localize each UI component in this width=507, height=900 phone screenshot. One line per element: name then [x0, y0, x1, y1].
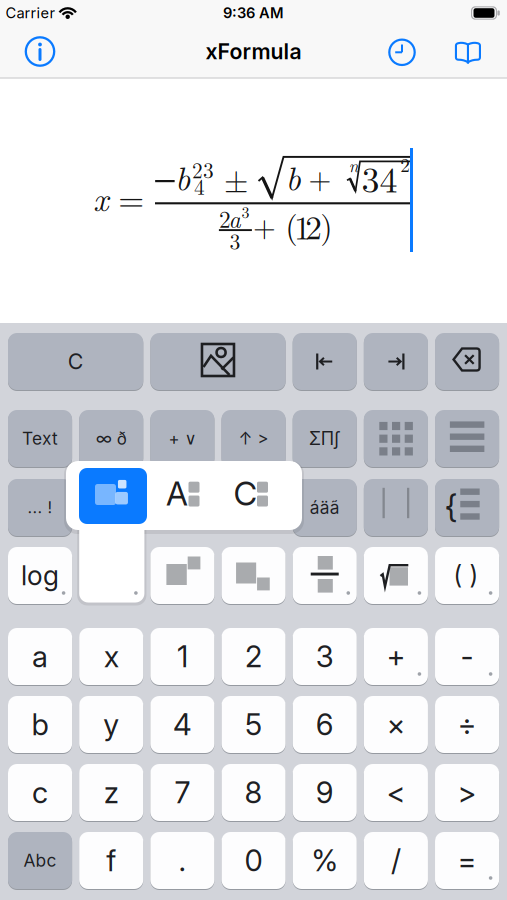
staticText: 3 [241, 200, 249, 223]
button[interactable]: Abc [8, 832, 72, 889]
button[interactable]: 7 [150, 764, 214, 821]
staticText: 5 [245, 707, 262, 742]
staticText: = [118, 174, 144, 221]
button[interactable]: - [435, 628, 499, 685]
button[interactable]: f [79, 832, 143, 889]
button[interactable]: > [435, 764, 499, 821]
staticText: × [386, 707, 405, 742]
staticText: % [311, 843, 338, 878]
button[interactable]: < [364, 764, 428, 821]
staticText: xFormula [205, 39, 301, 64]
button[interactable]: 9 [293, 764, 357, 821]
staticText: + [253, 204, 276, 246]
staticText: 8 [245, 775, 263, 810]
staticText: 1 [177, 639, 188, 674]
staticText: 23 [192, 154, 214, 184]
button[interactable]: Delete [435, 333, 499, 390]
button[interactable]: log [8, 547, 72, 604]
button[interactable]: 8 [221, 764, 286, 821]
button[interactable]: C [8, 333, 143, 390]
button[interactable]: c [8, 764, 72, 821]
button[interactable]: Absolute value [364, 479, 428, 536]
button[interactable]: Square root [364, 547, 428, 604]
staticText: z [104, 775, 119, 810]
staticText: / [391, 843, 401, 878]
staticText: Abc [23, 850, 56, 871]
button[interactable]: Superscript [150, 547, 214, 604]
button[interactable]: Info [22, 33, 58, 69]
staticText: 3 [316, 639, 334, 674]
button[interactable]: x [79, 628, 143, 685]
button[interactable]: 5 [221, 696, 286, 753]
button[interactable]: y [79, 696, 143, 753]
staticText: 3 [230, 225, 241, 256]
button[interactable]: Cases [435, 479, 499, 536]
staticText: n [349, 153, 359, 177]
button[interactable]: Text [8, 410, 72, 467]
staticText: C [68, 349, 84, 374]
button[interactable]: 6 [293, 696, 357, 753]
staticText: ( [454, 560, 463, 589]
button[interactable]: 1 [150, 628, 214, 685]
button[interactable]: ÷ [435, 696, 499, 753]
button[interactable]: b [8, 696, 72, 753]
staticText: x [93, 174, 108, 221]
staticText: áäã [310, 497, 340, 518]
button[interactable]: 4 [150, 696, 214, 753]
button[interactable]: 0 [221, 832, 286, 889]
button[interactable]: Parentheses [435, 547, 499, 604]
button[interactable]: áäã [293, 479, 357, 536]
button[interactable]: Subscript [221, 547, 286, 604]
button[interactable]: Move to start [293, 333, 357, 390]
staticText: f [106, 843, 116, 878]
staticText: C [233, 474, 257, 513]
staticText: ... ! [27, 498, 52, 517]
button[interactable]: . [150, 832, 214, 889]
staticText: > [458, 775, 477, 810]
staticText: ( [285, 202, 297, 247]
staticText: 9 [316, 775, 334, 810]
staticText: 0 [245, 843, 263, 878]
button[interactable]: ΣΠ∫ [293, 410, 357, 467]
button[interactable]: Lists [435, 410, 499, 467]
button[interactable]: + [364, 628, 428, 685]
staticText: ↑ > [239, 428, 269, 449]
button[interactable]: = [435, 832, 499, 889]
button[interactable]: Matrix layout [79, 468, 147, 524]
button[interactable]: % [293, 832, 357, 889]
staticText: A [166, 474, 188, 513]
button[interactable]: ∞ ð [79, 410, 143, 467]
button[interactable]: Align A [153, 466, 215, 522]
staticText: { [445, 487, 458, 526]
button[interactable]: 3 [293, 628, 357, 685]
staticText: = [458, 843, 477, 878]
button[interactable]: + ∨ [150, 410, 214, 467]
staticText: 2 [305, 202, 322, 249]
staticText: 1 [294, 202, 311, 249]
staticText: 2 [245, 639, 262, 674]
button[interactable]: Move to end [364, 333, 428, 390]
staticText: y [103, 707, 119, 742]
staticText: + ∨ [168, 428, 196, 449]
button[interactable]: Library [455, 41, 481, 64]
button[interactable]: Matrix [364, 410, 428, 467]
staticText: Text [22, 428, 58, 449]
staticText: . [178, 843, 186, 878]
button[interactable]: History [387, 37, 417, 67]
button[interactable]: × [364, 696, 428, 753]
staticText: ) [470, 560, 479, 589]
button[interactable]: z [79, 764, 143, 821]
button[interactable]: 2 [221, 628, 286, 685]
button[interactable]: Align C [222, 466, 284, 522]
button[interactable]: Fraction [293, 547, 357, 604]
button[interactable]: / [364, 832, 428, 889]
button[interactable]: a [8, 628, 72, 685]
staticText: 34 [362, 152, 398, 203]
staticText: 4 [173, 707, 192, 742]
button[interactable]: ... ! [8, 479, 72, 536]
staticText: a [228, 201, 240, 235]
staticText: Carrier [5, 4, 55, 22]
button[interactable]: Insert image [150, 333, 286, 390]
staticText: b [175, 153, 190, 200]
button[interactable]: ↑ > [221, 410, 286, 467]
